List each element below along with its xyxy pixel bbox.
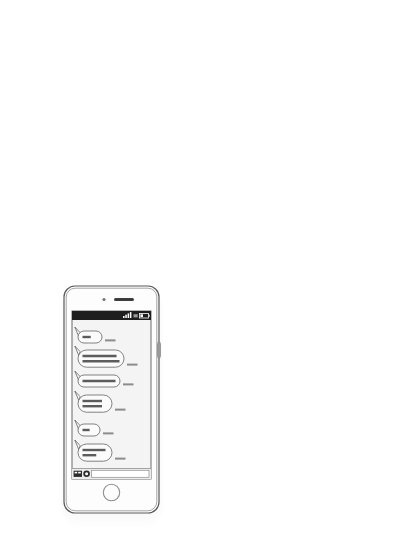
button[interactable]: Message 3 <box>78 375 138 389</box>
button[interactable]: Message 6 <box>78 444 138 464</box>
button[interactable]: Home <box>103 480 120 497</box>
button[interactable]: Emoji <box>83 470 92 479</box>
button[interactable]: Message 4 <box>78 395 138 415</box>
button[interactable]: Message 2 <box>78 350 138 370</box>
button[interactable]: Message input <box>91 469 151 480</box>
button[interactable]: Keyboard <box>73 470 82 478</box>
button[interactable]: Message 5 <box>78 424 138 438</box>
button[interactable]: Message 1 <box>78 331 138 345</box>
